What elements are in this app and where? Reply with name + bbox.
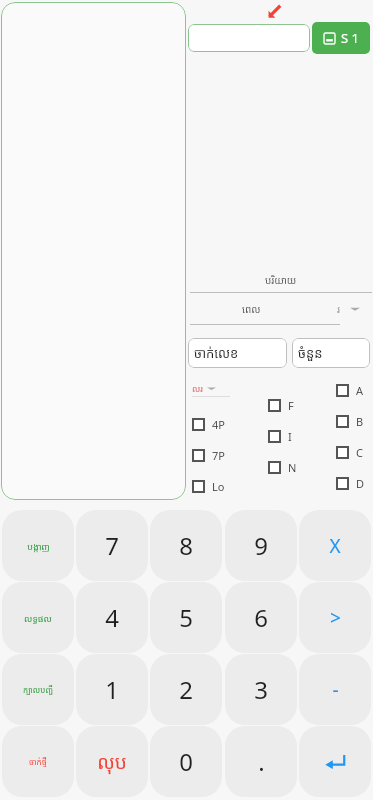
button[interactable]: F [268,396,294,414]
button[interactable]: លុប [76,726,148,797]
staticText: ចាក់លេខ [194,344,239,362]
button[interactable]: 9 [225,510,297,581]
button[interactable]: C [336,443,363,461]
button[interactable]: ចាក់លេខ [188,338,287,368]
button[interactable]: លរ [192,380,216,396]
button[interactable]: លទ្ធផល [2,582,74,653]
staticText: ចំនួន [298,344,323,362]
button[interactable]: 7P [192,446,225,464]
button[interactable]: ចំនួន [292,338,370,368]
staticText: S 1 [341,29,359,47]
button[interactable]: 5 [150,582,222,653]
button[interactable]: - [299,654,371,725]
staticText: > [330,605,341,631]
staticText: ចាក់ថ្មី [29,756,47,767]
button[interactable]: 1 [76,654,148,725]
button[interactable]: X [299,510,371,581]
staticText: X [329,533,341,559]
button[interactable]: 0 [150,726,222,797]
staticText: ពេល [242,302,261,316]
button[interactable] [190,294,372,324]
button[interactable]: N [268,458,297,476]
button[interactable]: S 1 [312,22,370,54]
staticText: A [356,383,364,398]
button[interactable]: បង្កាញ [2,510,74,581]
button[interactable]: 7 [76,510,148,581]
button[interactable]: . [225,726,297,797]
staticText: 0 [179,745,193,778]
staticText: 4 [105,601,119,634]
staticText: 2 [179,673,193,706]
staticText: បរិយាយ [265,273,297,287]
staticText: 6 [254,601,268,634]
staticText: I [288,429,292,444]
staticText: លុប [97,749,127,775]
button[interactable] [1,2,186,500]
staticText: លរ [192,382,203,394]
button[interactable]: ចាក់ថ្មី [2,726,74,797]
button[interactable]: ក្បាលបញ្ជី [2,654,74,725]
staticText: បង្កាញ [27,540,50,552]
button[interactable]: Enter [299,726,371,797]
staticText: ក្បាលបញ្ជី [23,684,53,695]
staticText: 1 [105,673,119,706]
button[interactable]: 3 [225,654,297,725]
staticText: B [356,414,364,429]
staticText: 4P [212,417,225,432]
button[interactable] [188,24,310,52]
staticText: 9 [254,529,268,562]
staticText: F [288,398,294,413]
staticText: C [356,445,363,460]
staticText: N [288,460,297,475]
staticText: Lo [212,479,225,494]
button[interactable]: B [336,412,364,430]
button[interactable]: D [336,474,365,492]
staticText: រ [337,302,340,316]
button[interactable]: 6 [225,582,297,653]
button[interactable]: A [336,381,364,399]
staticText: 7P [212,448,225,463]
staticText: លទ្ធផល [24,612,52,624]
staticText: 7 [105,529,119,562]
staticText: . [258,745,265,778]
button[interactable]: 4 [76,582,148,653]
button[interactable]: 8 [150,510,222,581]
staticText: 8 [179,529,193,562]
button[interactable]: 4P [192,415,225,433]
button[interactable]: 2 [150,654,222,725]
staticText: 5 [179,601,193,634]
button[interactable]: Lo [192,477,225,495]
button[interactable]: > [299,582,371,653]
staticText: - [332,677,339,703]
staticText: D [356,476,365,491]
button[interactable]: I [268,427,292,445]
staticText: 3 [254,673,268,706]
